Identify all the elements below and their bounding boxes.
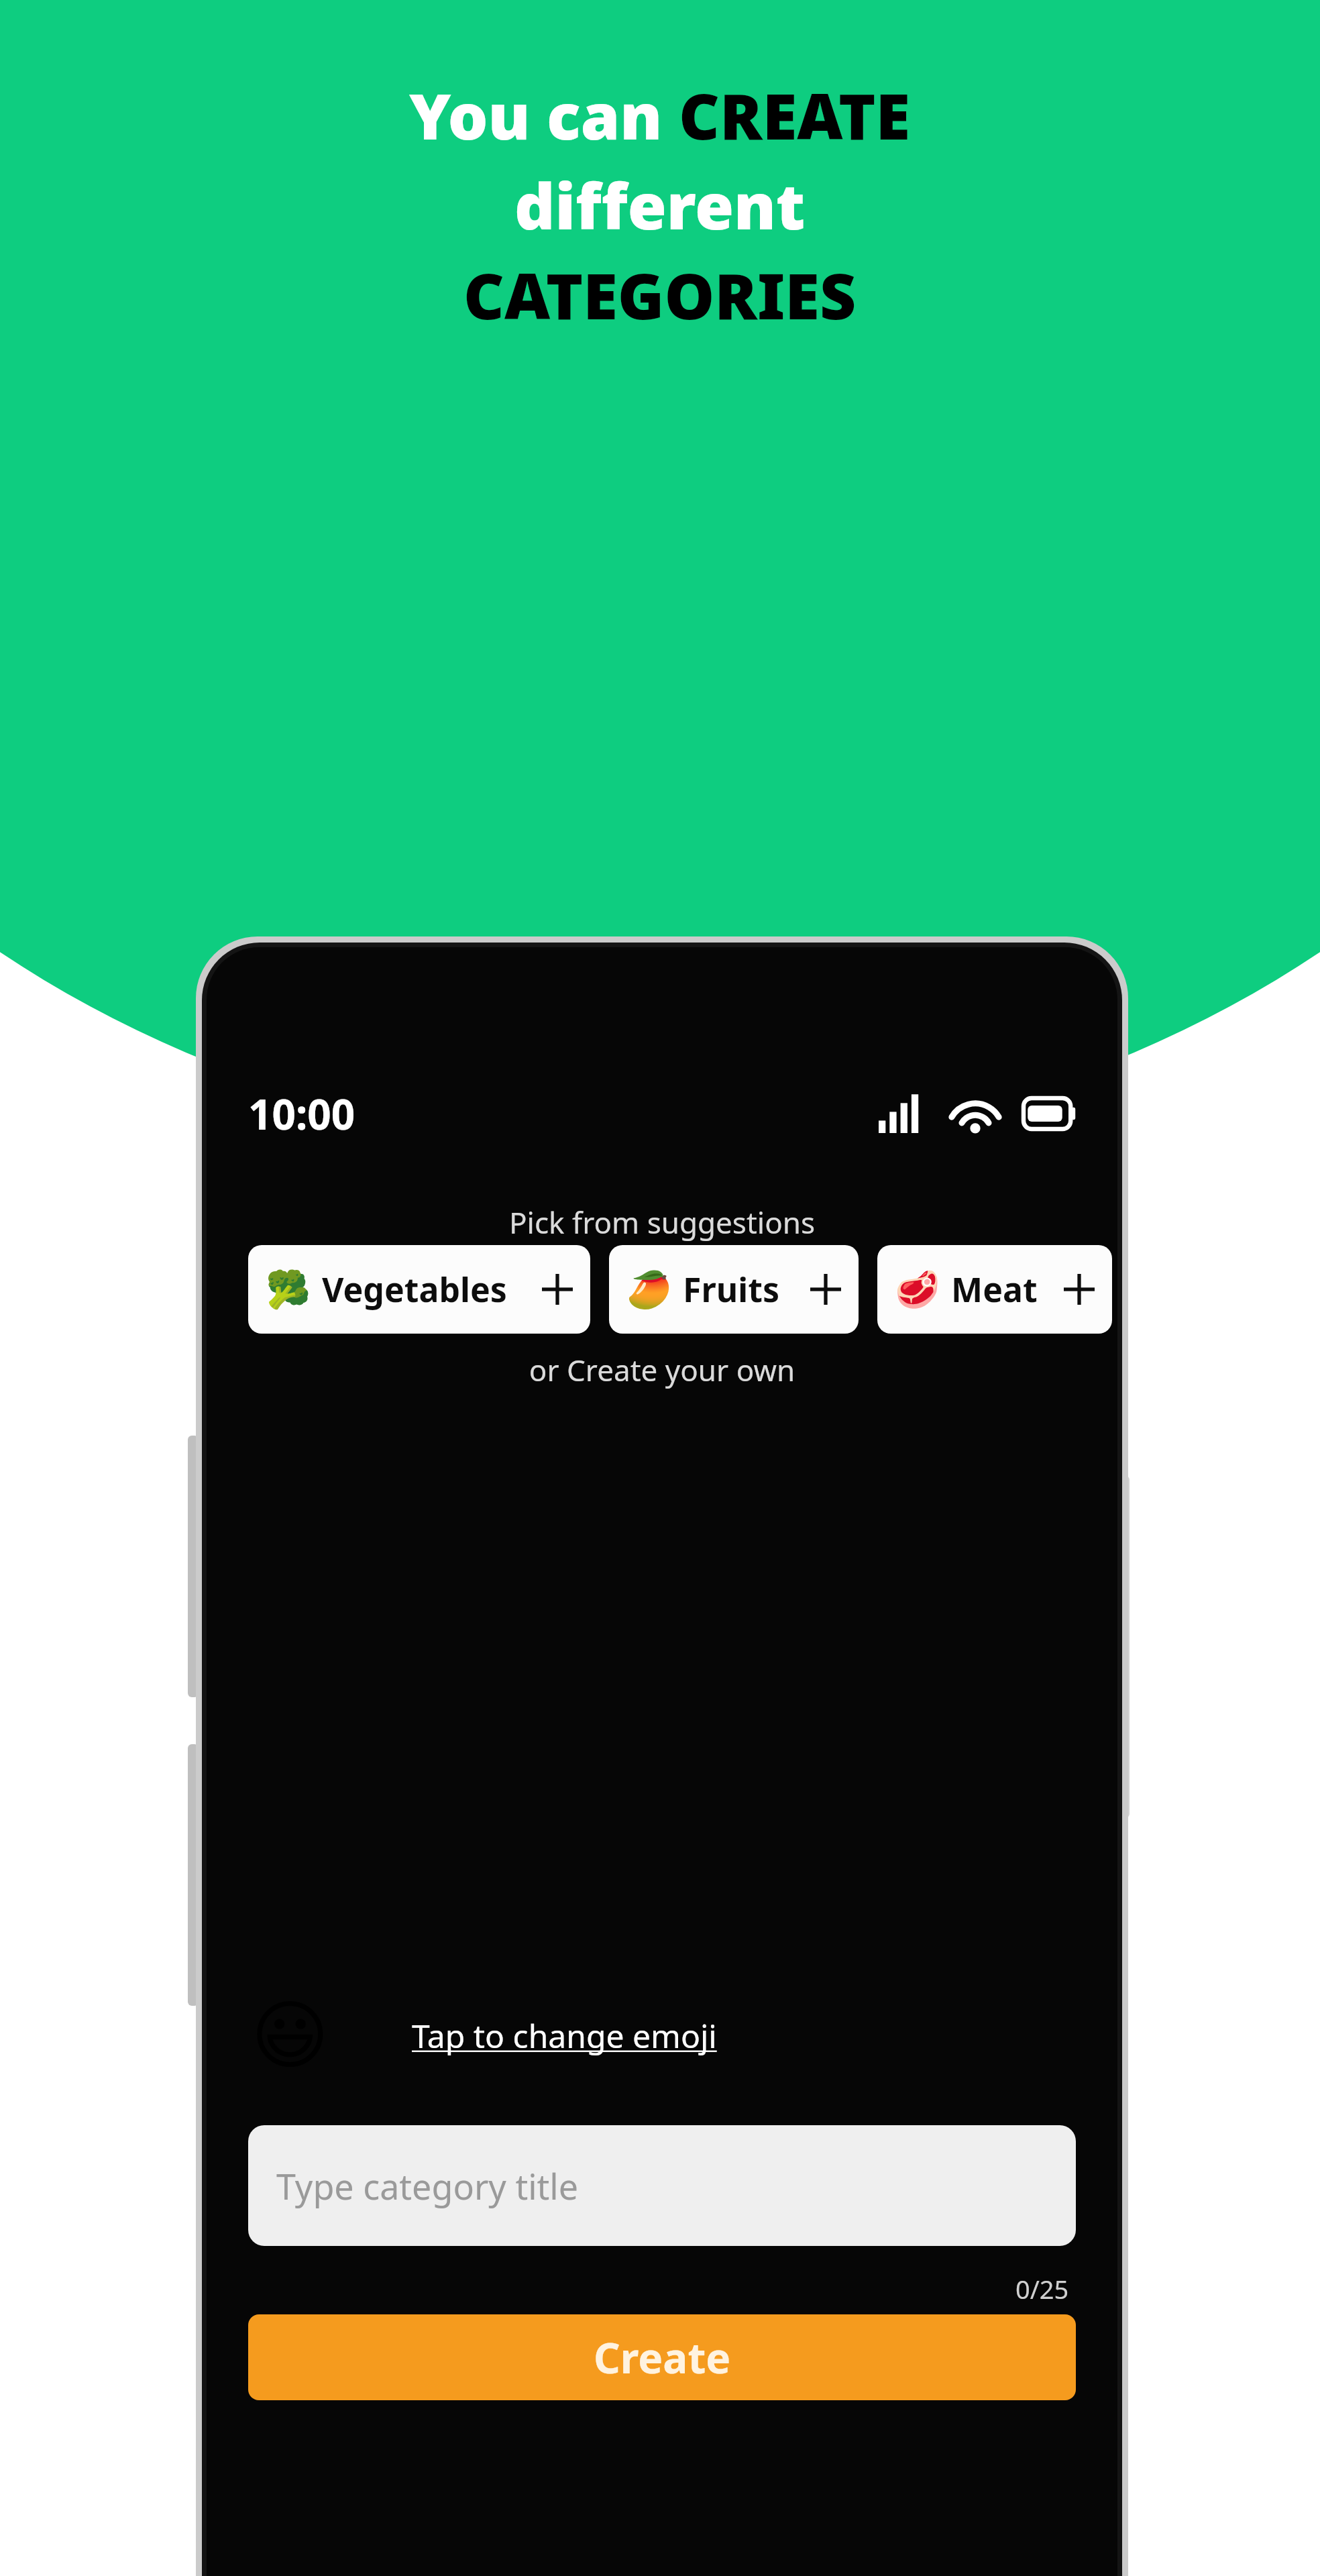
staticText: or Create your own — [207, 1350, 1117, 1390]
staticText: 0/25 — [1015, 2271, 1069, 2306]
staticText: 🥦 — [266, 1269, 311, 1311]
staticText: You can — [409, 72, 679, 158]
button[interactable]: Create — [248, 2314, 1076, 2400]
button[interactable]: 🥭 — [609, 1245, 859, 1334]
staticText: Vegetables — [322, 1267, 507, 1312]
staticText: 🥭 — [626, 1269, 672, 1311]
staticText: Meat — [951, 1267, 1038, 1312]
staticText: Create — [594, 2329, 731, 2385]
staticText: Pick from suggestions — [207, 1202, 1117, 1242]
staticText: Fruits — [683, 1267, 780, 1312]
staticText: 10:00 — [248, 1085, 355, 1142]
staticText: CATEGORIES — [463, 252, 857, 338]
button[interactable]: Tap to change emoji — [412, 2014, 717, 2057]
staticText: 🥩 — [895, 1269, 940, 1311]
button[interactable]: 🥩 — [877, 1245, 1112, 1334]
staticText: CREATE — [679, 72, 911, 158]
button[interactable]: Type category title — [248, 2125, 1076, 2246]
button[interactable]: 🥦 — [248, 1245, 590, 1334]
staticText: different — [514, 162, 806, 248]
staticText: Type category title — [276, 2162, 579, 2210]
